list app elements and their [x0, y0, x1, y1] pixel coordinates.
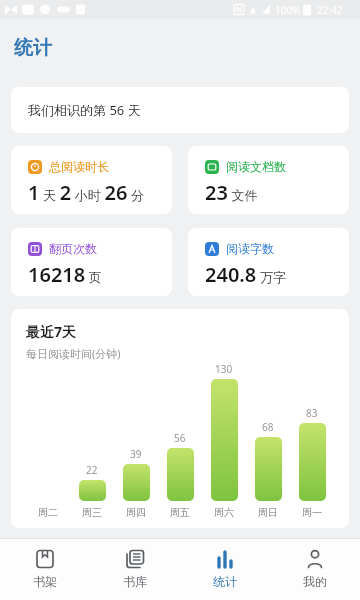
staticText: 1 天 2 小时 26 分	[28, 179, 144, 206]
staticText: 阅读字数	[226, 241, 274, 256]
staticText: 我们相识的第 56 天	[28, 101, 141, 119]
staticText: 240.8 万字	[205, 261, 286, 288]
staticText: 最近7天	[26, 322, 77, 341]
button[interactable]: 书架	[0, 539, 90, 600]
button[interactable]: 最近7天	[11, 309, 349, 528]
staticText: 周一	[302, 506, 322, 519]
button[interactable]: 翻页次数	[11, 228, 172, 296]
staticText: 统计	[14, 36, 52, 60]
staticText: 书架	[33, 574, 57, 589]
staticText: 我的	[303, 574, 327, 589]
staticText: 83	[306, 406, 318, 420]
staticText: 100%	[275, 3, 301, 17]
button[interactable]: 我的	[270, 539, 360, 600]
staticText: 39	[130, 447, 142, 461]
staticText: 周三	[82, 506, 102, 519]
staticText: 16218 页	[28, 261, 102, 288]
button[interactable]: 书库	[90, 539, 180, 600]
staticText: 周五	[170, 506, 190, 519]
staticText: 统计	[213, 574, 237, 589]
staticText: 周二	[38, 506, 58, 519]
button[interactable]: 统计	[180, 539, 270, 600]
staticText: 周六	[214, 506, 234, 519]
button[interactable]: 阅读字数	[188, 228, 349, 296]
button[interactable]: 我们相识的第 56 天	[11, 87, 349, 133]
staticText: 56	[174, 431, 186, 445]
staticText: 周日	[258, 506, 278, 519]
button[interactable]: 阅读文档数	[188, 146, 349, 214]
staticText: 每日阅读时间(分钟)	[26, 346, 121, 361]
staticText: 23 文件	[205, 179, 258, 206]
staticText: 阅读文档数	[226, 159, 286, 174]
staticText: 130	[215, 362, 233, 376]
staticText: 22:42	[317, 3, 343, 17]
staticText: 总阅读时长	[49, 159, 109, 174]
button[interactable]: 总阅读时长	[11, 146, 172, 214]
staticText: 翻页次数	[49, 241, 97, 256]
staticText: 22	[86, 463, 98, 477]
staticText: 书库	[123, 574, 147, 589]
staticText: 周四	[126, 506, 146, 519]
staticText: 68	[262, 420, 274, 434]
